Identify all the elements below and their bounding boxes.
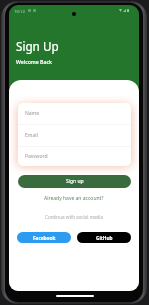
staticText: Password [25, 153, 48, 160]
staticText: Email [25, 132, 38, 139]
staticText: Facebook [33, 235, 56, 241]
staticText: Continue with social media [45, 214, 104, 220]
button[interactable]: GitHub [77, 232, 131, 243]
button[interactable]: Email [18, 125, 131, 146]
staticText: Welcome Back [16, 58, 52, 65]
button[interactable]: Name [18, 103, 131, 124]
staticText: GitHub [96, 235, 113, 241]
button[interactable]: Already have an account? [9, 193, 139, 203]
staticText: Sign up [66, 178, 84, 185]
button[interactable]: Facebook [17, 232, 71, 243]
staticText: Sign Up [16, 38, 59, 54]
staticText: 10:12 [14, 8, 25, 14]
button[interactable]: Sign up [18, 175, 131, 188]
staticText: Name [25, 110, 40, 117]
button[interactable]: Password [18, 147, 131, 166]
staticText: Already have an account? [44, 195, 104, 202]
